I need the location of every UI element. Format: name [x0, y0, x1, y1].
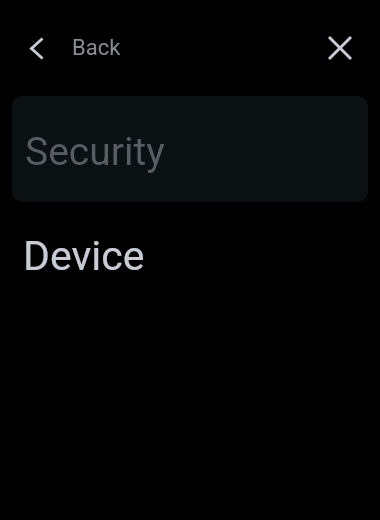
button[interactable]: Close	[314, 22, 366, 74]
button[interactable]: Security	[12, 96, 368, 202]
staticText: Device	[23, 232, 145, 280]
button[interactable]: Back	[16, 24, 135, 72]
staticText: Security	[25, 129, 165, 175]
staticText: Back	[72, 35, 121, 61]
